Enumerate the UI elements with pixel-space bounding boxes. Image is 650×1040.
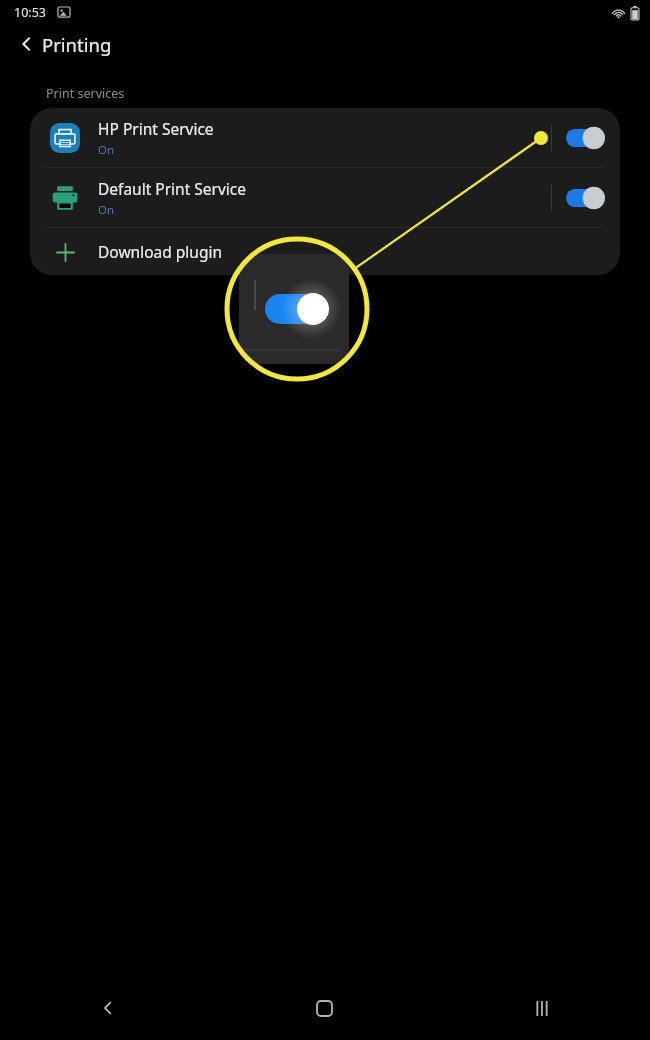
button[interactable]: Back (0, 984, 216, 1032)
staticText: Default Print Service (98, 178, 246, 199)
staticText: Download plugin (98, 241, 223, 262)
button[interactable]: Download plugin (30, 228, 620, 275)
button[interactable]: Home (216, 984, 433, 1032)
staticText: On (98, 142, 115, 158)
button[interactable]: Toggle print service (566, 127, 606, 149)
button[interactable]: Toggle print service (566, 187, 606, 209)
staticText: HP Print Service (98, 118, 214, 139)
button[interactable]: Default Print Service (30, 168, 620, 227)
staticText: 10:53 (14, 4, 46, 21)
staticText: Print services (46, 85, 125, 102)
staticText: Printing (42, 32, 112, 57)
button[interactable]: HP Print Service (30, 108, 620, 167)
button[interactable]: Back (10, 28, 44, 60)
button[interactable]: Recent apps (433, 984, 650, 1032)
staticText: On (98, 202, 115, 218)
